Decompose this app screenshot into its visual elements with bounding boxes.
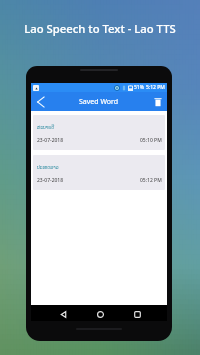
staticText: 05:12 PM (140, 177, 162, 184)
button[interactable]: Recents (129, 306, 145, 322)
button[interactable]: Back (55, 306, 71, 322)
staticText: 23-07-2018 (37, 177, 64, 184)
staticText: ປະເທດລາວ (37, 165, 59, 170)
staticText: 5:12 PM (146, 84, 165, 91)
staticText: 51% (134, 84, 144, 91)
staticText: 05:10 PM (140, 137, 162, 144)
staticText: 23-07-2018 (37, 137, 64, 144)
button[interactable]: Delete (149, 92, 166, 111)
button[interactable]: ສະບາຍດີ (33, 115, 165, 150)
staticText: Saved Word (79, 97, 119, 107)
button[interactable]: Home (92, 306, 108, 322)
staticText: ສະບາຍດີ (37, 125, 55, 130)
button[interactable]: ປະເທດລາວ (33, 155, 165, 190)
button[interactable]: Back (32, 92, 49, 111)
staticText: Lao Speech to Text - Lao TTS (0, 21, 200, 36)
